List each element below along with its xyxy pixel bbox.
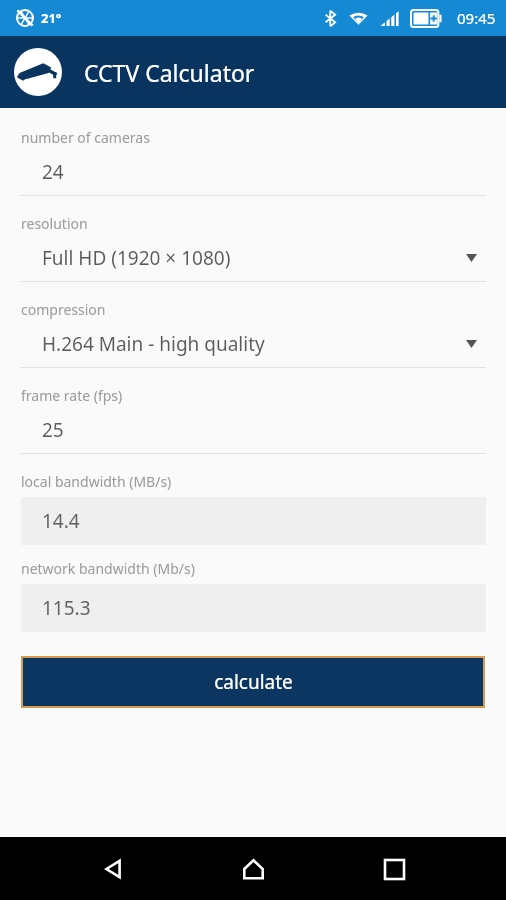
staticText: resolution bbox=[21, 214, 88, 233]
staticText: compression bbox=[21, 300, 106, 319]
button[interactable]: Back bbox=[85, 841, 141, 897]
staticText: 115.3 bbox=[42, 595, 91, 621]
button[interactable]: calculate bbox=[21, 656, 485, 708]
button[interactable]: resolution bbox=[0, 214, 506, 300]
staticText: number of cameras bbox=[21, 128, 150, 147]
staticText: 14.4 bbox=[42, 508, 80, 534]
staticText: 24 bbox=[42, 159, 486, 185]
staticText: CCTV Calculator bbox=[84, 57, 255, 88]
button[interactable]: Home bbox=[225, 841, 281, 897]
button[interactable]: Recents bbox=[366, 841, 422, 897]
button[interactable]: compression bbox=[0, 300, 506, 386]
staticText: local bandwidth (MB/s) bbox=[21, 472, 172, 491]
staticText: frame rate (fps) bbox=[21, 386, 123, 405]
staticText: network bandwidth (Mb/s) bbox=[21, 559, 195, 578]
staticText: H.264 Main - high quality bbox=[42, 331, 466, 357]
button[interactable]: App logo bbox=[14, 48, 62, 96]
staticText: 09:45 bbox=[457, 8, 496, 28]
staticText: Full HD (1920 × 1080) bbox=[42, 245, 466, 271]
staticText: calculate bbox=[214, 669, 293, 695]
staticText: 25 bbox=[42, 417, 486, 443]
staticText: 21° bbox=[41, 9, 62, 27]
button[interactable]: number of cameras bbox=[0, 128, 506, 214]
button[interactable]: frame rate (fps) bbox=[0, 386, 506, 472]
